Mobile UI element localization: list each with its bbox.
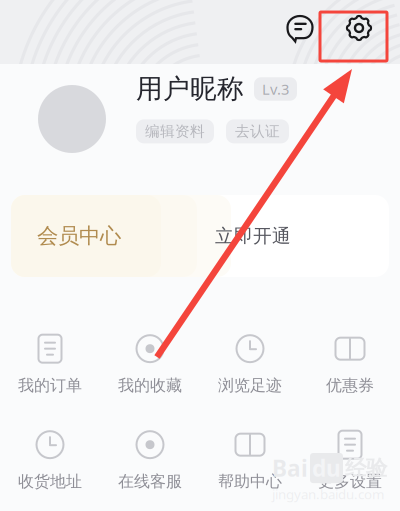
button[interactable]: 会员中心 — [0, 195, 400, 277]
staticText: 编辑资料 — [145, 122, 205, 140]
staticText: 更多设置 — [318, 472, 382, 491]
button[interactable]: 我的收藏 — [100, 327, 200, 401]
staticText: jingyan.baidu.com — [272, 485, 384, 503]
staticText: Lv.3 — [262, 79, 289, 99]
button[interactable]: 收货地址 — [0, 423, 100, 497]
staticText: 在线客服 — [118, 472, 182, 491]
staticText: 去认证 — [235, 122, 280, 140]
staticText: 优惠券 — [326, 376, 374, 395]
staticText: 收货地址 — [18, 472, 82, 491]
staticText: 我的收藏 — [118, 376, 182, 395]
button[interactable]: 浏览足迹 — [200, 327, 300, 401]
staticText: 浏览足迹 — [218, 376, 282, 395]
button[interactable]: Settings — [344, 13, 374, 43]
staticText: 用户昵称 — [136, 73, 244, 105]
staticText: 立即开通 — [215, 224, 291, 247]
button[interactable]: 用户昵称 — [0, 56, 400, 160]
staticText: 我的订单 — [18, 376, 82, 395]
button[interactable]: Messages — [285, 13, 315, 43]
staticText: 会员中心 — [37, 223, 121, 249]
staticText: 经验 — [345, 455, 387, 481]
staticText: 帮助中心 — [218, 472, 282, 491]
staticText: du — [312, 453, 341, 483]
button[interactable]: 更多设置 — [300, 423, 400, 497]
button[interactable]: 我的订单 — [0, 327, 100, 401]
button[interactable]: 优惠券 — [300, 327, 400, 401]
staticText: Bai — [272, 453, 308, 483]
button[interactable]: 帮助中心 — [200, 423, 300, 497]
button[interactable]: 在线客服 — [100, 423, 200, 497]
